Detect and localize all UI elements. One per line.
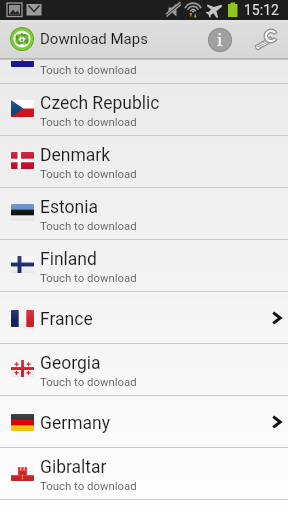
staticText: Touch to download bbox=[40, 375, 137, 388]
staticText: 15:12 bbox=[244, 2, 279, 18]
button[interactable]: Croatia bbox=[0, 32, 288, 84]
staticText: Estonia bbox=[40, 197, 98, 218]
button[interactable]: Estonia bbox=[0, 188, 288, 240]
button[interactable]: App icon bbox=[10, 27, 34, 51]
staticText: Georgia bbox=[40, 353, 101, 374]
button[interactable]: Georgia bbox=[0, 344, 288, 396]
staticText: Croatia bbox=[40, 41, 97, 62]
staticText: Touch to download bbox=[40, 271, 137, 284]
staticText: Gibraltar bbox=[40, 457, 107, 478]
button[interactable]: Finland bbox=[0, 240, 288, 292]
staticText: Touch to download bbox=[40, 63, 137, 76]
staticText: i bbox=[217, 28, 223, 51]
button[interactable]: Denmark bbox=[0, 136, 288, 188]
staticText: Germany bbox=[40, 413, 110, 434]
staticText: France bbox=[40, 309, 93, 330]
staticText: Czech Republic bbox=[40, 93, 160, 114]
staticText: Finland bbox=[40, 249, 97, 270]
staticText: Touch to download bbox=[40, 115, 137, 128]
staticText: Touch to download bbox=[40, 479, 137, 492]
button[interactable]: Gibraltar bbox=[0, 448, 288, 500]
staticText: Denmark bbox=[40, 145, 111, 166]
staticText: Download Maps bbox=[40, 30, 148, 48]
button[interactable]: Czech Republic bbox=[0, 84, 288, 136]
button[interactable]: France bbox=[0, 292, 288, 344]
staticText: Touch to download bbox=[40, 219, 137, 232]
button[interactable]: Info bbox=[208, 28, 232, 52]
button[interactable]: Germany bbox=[0, 396, 288, 448]
button[interactable]: Settings bbox=[252, 26, 278, 52]
staticText: Touch to download bbox=[40, 167, 137, 180]
